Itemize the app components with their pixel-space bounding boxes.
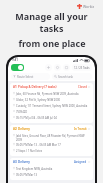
staticText: #1 [13, 85, 17, 89]
staticText: Jabil Sites, Ground Floor, 48 Pitwater R… [16, 134, 90, 141]
staticText: Custody, 1/1 Tennant Street, Sydney NSW … [16, 104, 88, 108]
staticText: Pickup & Delivery (7 tasks) [18, 85, 57, 89]
staticText: Closed [78, 85, 87, 89]
button[interactable]: #2 [10, 125, 93, 156]
staticText: 750942D [16, 110, 28, 114]
button[interactable]: Add task [45, 64, 52, 71]
staticText: In Transit [74, 127, 87, 131]
button[interactable]: Refresh [54, 64, 61, 71]
button[interactable]: Search task [52, 73, 92, 80]
button[interactable]: Online toggle [11, 64, 24, 71]
button[interactable]: #3 [10, 158, 93, 180]
button[interactable]: #1 [10, 83, 93, 123]
staticText: Workiz [83, 4, 95, 9]
staticText: 12 / 25 Tasks [74, 66, 90, 70]
staticText: from one place [18, 37, 86, 49]
staticText: #3 [13, 160, 17, 164]
staticText: Search task [58, 75, 73, 79]
staticText: #2 [13, 127, 17, 131]
staticText: Test Kingdom NSW, Australia [16, 167, 53, 171]
staticText: 9:41 [12, 58, 18, 62]
staticText: Jobs, 60 Finance Rd, Pyrmont NSW 2009, A… [16, 92, 79, 96]
button[interactable]: 12 / 25 Tasks [72, 64, 92, 71]
button[interactable]: Workiz home [76, 3, 96, 10]
staticText: Delivery [18, 127, 30, 131]
staticText: 2 Stops / 1 Run Extra [16, 149, 43, 153]
button[interactable]: Calendar [63, 64, 70, 71]
staticText: Delivery [18, 160, 30, 164]
staticText: 05:05 PM Mar 13 - 06:05 AM Mar 17 [16, 143, 61, 147]
staticText: Route Select [17, 75, 34, 79]
staticText: Globe, 32 Pitt St, Sydney NSW 2000 [16, 98, 61, 102]
staticText: 05:15 PM Jul 04 - 06:05 AM Jul 04 [16, 116, 57, 120]
staticText: Manage all your tasks [3, 10, 100, 34]
staticText: Assigned [74, 160, 87, 164]
button[interactable]: Route Select [11, 73, 50, 80]
staticText: 05:05 PM Mar 13 [16, 173, 38, 177]
